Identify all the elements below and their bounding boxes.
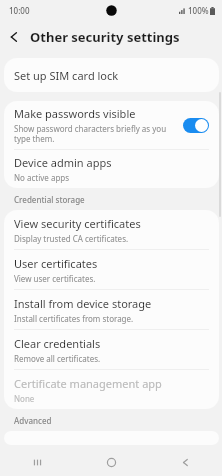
button[interactable]: User certificates xyxy=(4,250,219,289)
staticText: None xyxy=(14,393,35,404)
button[interactable]: Home xyxy=(74,448,148,476)
staticText: Show password characters briefly as you … xyxy=(14,123,177,144)
staticText: Other security settings xyxy=(30,28,180,46)
staticText: Display trusted CA certificates. xyxy=(14,233,129,244)
staticText: Set up SIM card lock xyxy=(14,68,119,83)
button[interactable]: Make passwords visible xyxy=(183,118,209,133)
button[interactable]: Set up SIM card lock xyxy=(4,58,219,92)
staticText: View user certificates. xyxy=(14,273,96,284)
button[interactable]: View security certificates xyxy=(4,210,219,249)
button[interactable]: Clear credentials xyxy=(4,330,219,369)
staticText: Install certificates from storage. xyxy=(14,313,134,324)
staticText: User certificates xyxy=(14,256,98,271)
staticText: Certificate management app xyxy=(14,376,162,391)
button[interactable]: Recent apps xyxy=(0,448,74,476)
button[interactable]: Back xyxy=(148,448,222,476)
staticText: 100% xyxy=(188,5,209,16)
staticText: Advanced xyxy=(14,415,52,426)
staticText: Make passwords visible xyxy=(14,106,136,121)
button[interactable]: Install from device storage xyxy=(4,290,219,329)
button[interactable]: Device admin apps xyxy=(4,150,219,188)
staticText: Remove all certificates. xyxy=(14,353,101,364)
button[interactable]: Make passwords visible xyxy=(4,101,219,149)
staticText: Install from device storage xyxy=(14,296,152,311)
staticText: No active apps xyxy=(14,172,70,183)
staticText: Credential storage xyxy=(14,194,85,205)
button[interactable]: Back xyxy=(0,23,27,50)
staticText: 10:00 xyxy=(9,5,30,16)
staticText: View security certificates xyxy=(14,216,141,231)
staticText: Clear credentials xyxy=(14,336,101,351)
staticText: Device admin apps xyxy=(14,155,112,170)
button[interactable]: Certificate management app xyxy=(4,370,219,409)
